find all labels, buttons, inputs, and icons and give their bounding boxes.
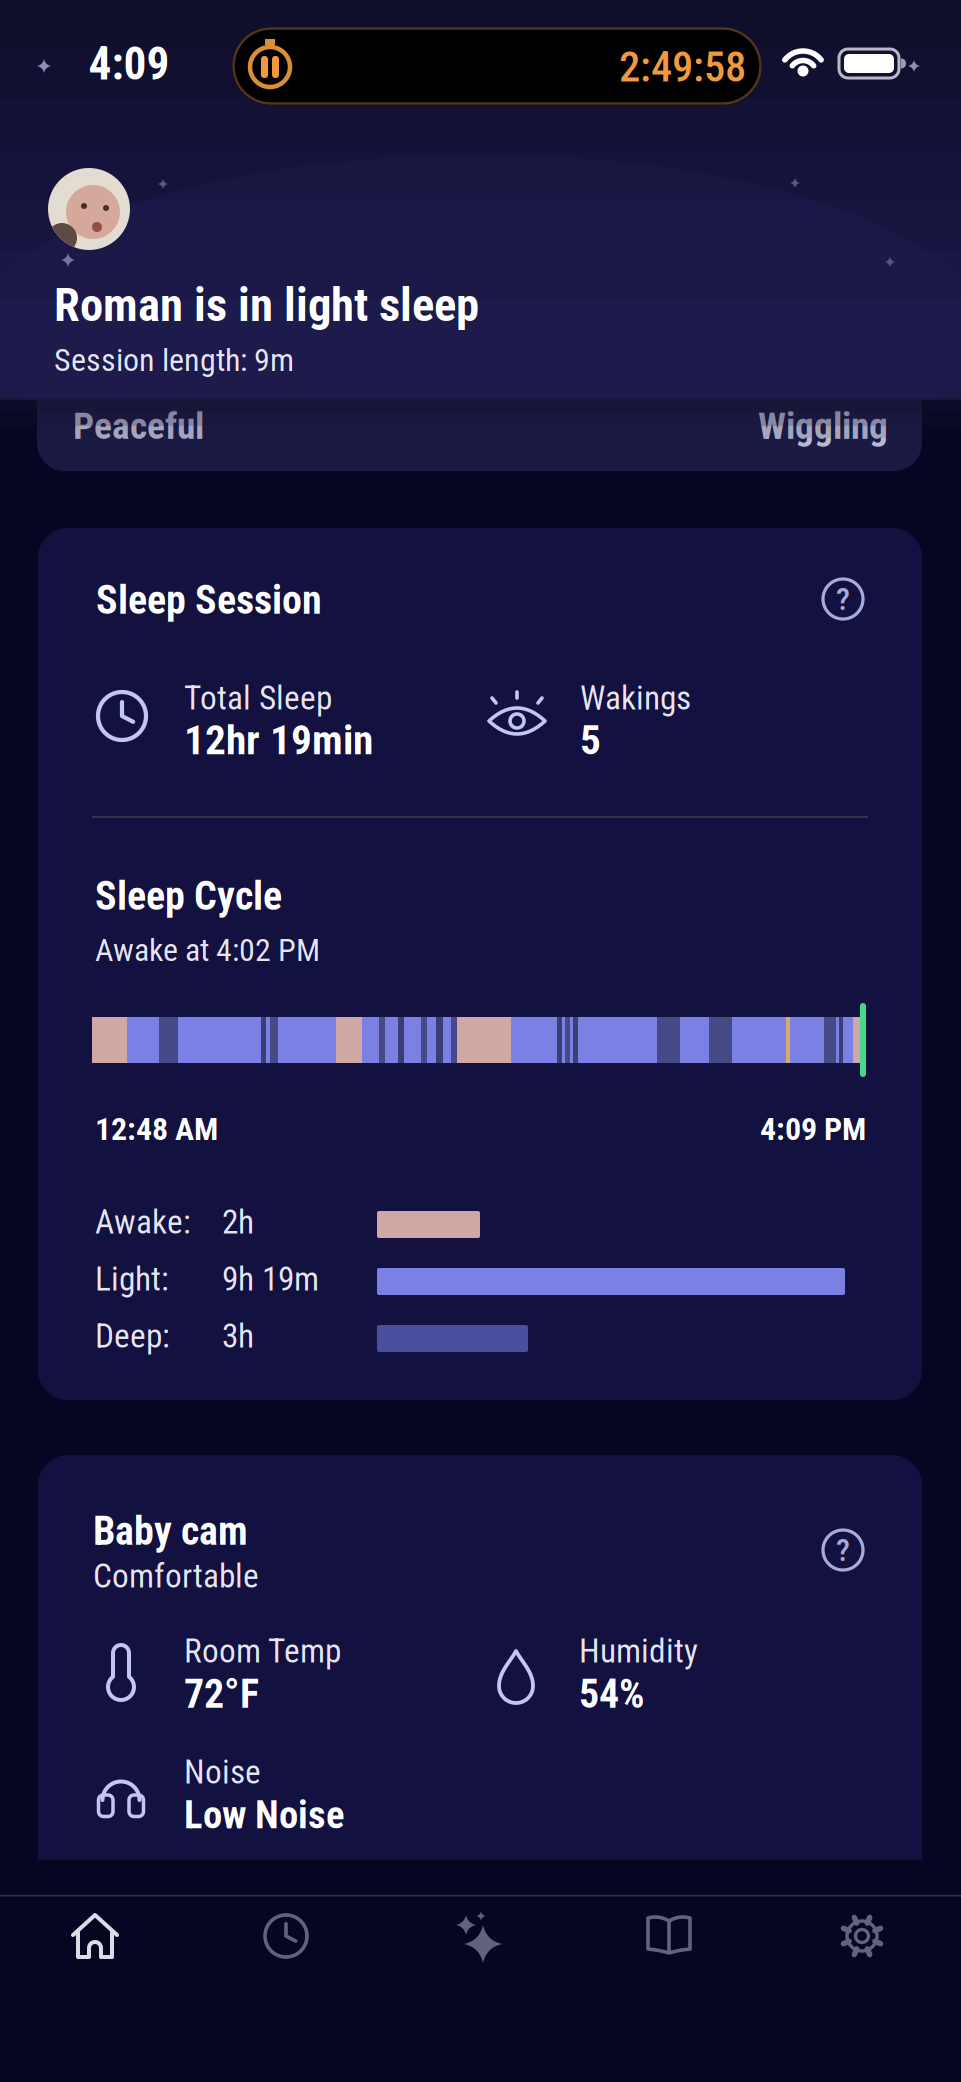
staticText: Wiggling xyxy=(758,404,888,448)
staticText: Wakings xyxy=(580,678,691,718)
staticText: ? xyxy=(836,1531,850,1569)
button[interactable]: Settings xyxy=(822,1896,902,1976)
staticText: 12hr 19min xyxy=(184,716,373,764)
staticText: 12:48 AM xyxy=(95,1110,218,1148)
staticText: 3h xyxy=(222,1316,254,1356)
staticText: 4:09 xyxy=(88,37,169,90)
staticText: Sleep Session xyxy=(96,577,322,623)
button[interactable]: History xyxy=(246,1896,326,1976)
staticText: Noise xyxy=(184,1752,261,1792)
staticText: 5 xyxy=(580,716,601,764)
button[interactable]: Sleep timer live activity xyxy=(232,27,762,105)
staticText: 4:09 PM xyxy=(760,1110,866,1148)
staticText: 72°F xyxy=(184,1671,259,1717)
staticText: Deep: xyxy=(95,1316,170,1356)
button[interactable]: About sleep session xyxy=(821,577,865,621)
staticText: Light: xyxy=(95,1259,169,1299)
button[interactable]: About baby cam xyxy=(821,1528,865,1572)
staticText: Comfortable xyxy=(93,1556,259,1596)
staticText: Awake at 4:02 PM xyxy=(95,931,320,969)
button[interactable]: Baby profile xyxy=(48,168,130,250)
staticText: Humidity xyxy=(579,1631,698,1671)
staticText: Session length: 9m xyxy=(54,341,294,379)
staticText: Peaceful xyxy=(73,404,204,448)
staticText: Low Noise xyxy=(184,1792,345,1838)
staticText: Room Temp xyxy=(184,1631,341,1671)
staticText: 2h xyxy=(222,1202,254,1242)
staticText: Total Sleep xyxy=(184,678,332,718)
staticText: 9h 19m xyxy=(222,1259,319,1299)
staticText: 2:49:58 xyxy=(619,42,746,92)
button[interactable]: Insights xyxy=(438,1896,518,1976)
staticText: 54% xyxy=(579,1671,645,1717)
staticText: Roman is in light sleep xyxy=(54,278,479,332)
staticText: Sleep Cycle xyxy=(95,873,282,919)
staticText: Baby cam xyxy=(93,1508,248,1554)
staticText: Awake: xyxy=(95,1202,191,1242)
staticText: ? xyxy=(836,580,850,618)
button[interactable]: Home xyxy=(55,1896,135,1976)
button[interactable]: Guides xyxy=(629,1896,709,1976)
